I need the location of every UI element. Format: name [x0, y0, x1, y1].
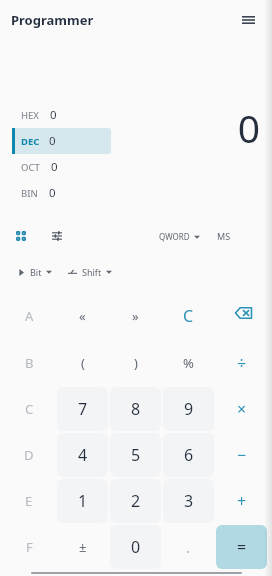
staticText: E — [25, 492, 33, 510]
button[interactable]: − — [216, 433, 267, 477]
button[interactable]: E — [3, 479, 55, 523]
staticText: 2 — [131, 490, 141, 512]
staticText: « — [79, 307, 86, 325]
button[interactable]: × — [216, 387, 267, 431]
staticText: OCT — [21, 161, 40, 174]
staticText: DEC — [21, 135, 40, 148]
staticText: % — [183, 354, 194, 372]
staticText: 5 — [131, 444, 141, 466]
button[interactable]: Settings — [45, 224, 69, 248]
button[interactable]: C — [163, 293, 214, 338]
staticText: 0 — [51, 159, 58, 175]
button[interactable]: B — [3, 340, 55, 385]
staticText: − — [237, 444, 247, 466]
staticText: = — [237, 536, 247, 558]
staticText: 1 — [78, 490, 88, 512]
button[interactable]: C — [3, 387, 55, 431]
button[interactable]: « — [57, 293, 108, 338]
staticText: 0 — [131, 536, 141, 558]
button[interactable]: D — [3, 433, 55, 477]
staticText: 0 — [49, 133, 56, 149]
button[interactable]: 3 — [163, 479, 214, 523]
staticText: 3 — [184, 490, 194, 512]
button[interactable]: MS — [215, 227, 233, 245]
button[interactable]: 5 — [110, 433, 161, 477]
button[interactable]: % — [163, 340, 214, 385]
button[interactable]: 8 — [110, 387, 161, 431]
staticText: ÷ — [237, 352, 247, 374]
button[interactable]: Menu — [232, 4, 264, 36]
button[interactable]: HEX — [0, 102, 272, 128]
staticText: 0 — [50, 107, 57, 123]
staticText: 9 — [184, 398, 194, 420]
button[interactable]: 4 — [57, 433, 108, 477]
button[interactable]: BIN — [0, 180, 272, 206]
staticText: Shift — [82, 266, 102, 278]
staticText: D — [24, 446, 34, 464]
staticText: 7 — [78, 398, 88, 420]
button[interactable]: DEC — [0, 128, 272, 154]
staticText: BIN — [21, 187, 38, 200]
button[interactable] — [216, 293, 267, 338]
staticText: ( — [81, 354, 85, 372]
staticText: C — [183, 305, 194, 327]
staticText: A — [25, 307, 34, 325]
staticText: QWORD — [159, 231, 190, 242]
staticText: Programmer — [11, 11, 94, 29]
staticText: 6 — [184, 444, 194, 466]
staticText: MS — [217, 230, 231, 242]
staticText: C — [25, 400, 34, 418]
button[interactable]: + — [216, 479, 267, 523]
staticText: F — [26, 538, 33, 556]
button[interactable]: ÷ — [216, 340, 267, 385]
button[interactable]: 9 — [163, 387, 214, 431]
staticText: 4 — [78, 444, 88, 466]
staticText: » — [132, 307, 139, 325]
staticText: ) — [134, 354, 138, 372]
button[interactable]: » — [110, 293, 161, 338]
staticText: . — [186, 536, 191, 558]
staticText: 8 — [131, 398, 141, 420]
button[interactable]: 2 — [110, 479, 161, 523]
button[interactable]: Shift — [66, 263, 114, 281]
button[interactable]: F — [3, 525, 55, 569]
staticText: Bit — [30, 266, 42, 278]
staticText: ± — [79, 538, 87, 556]
button[interactable]: QWORD — [157, 228, 202, 245]
staticText: 0 — [237, 101, 260, 154]
button[interactable]: 6 — [163, 433, 214, 477]
staticText: 0 — [49, 185, 56, 201]
staticText: HEX — [21, 109, 39, 122]
staticText: + — [237, 490, 247, 512]
button[interactable]: 1 — [57, 479, 108, 523]
staticText: × — [237, 398, 247, 420]
staticText: B — [25, 354, 34, 372]
button[interactable]: Bit — [16, 263, 54, 281]
button[interactable]: ± — [57, 525, 108, 569]
button[interactable]: = — [216, 525, 267, 569]
button[interactable]: ) — [110, 340, 161, 385]
button[interactable]: 7 — [57, 387, 108, 431]
button[interactable]: 0 — [110, 525, 161, 569]
button[interactable]: ( — [57, 340, 108, 385]
button[interactable]: A — [3, 293, 55, 338]
button[interactable]: Bit grid — [9, 224, 33, 248]
button[interactable]: OCT — [0, 154, 272, 180]
